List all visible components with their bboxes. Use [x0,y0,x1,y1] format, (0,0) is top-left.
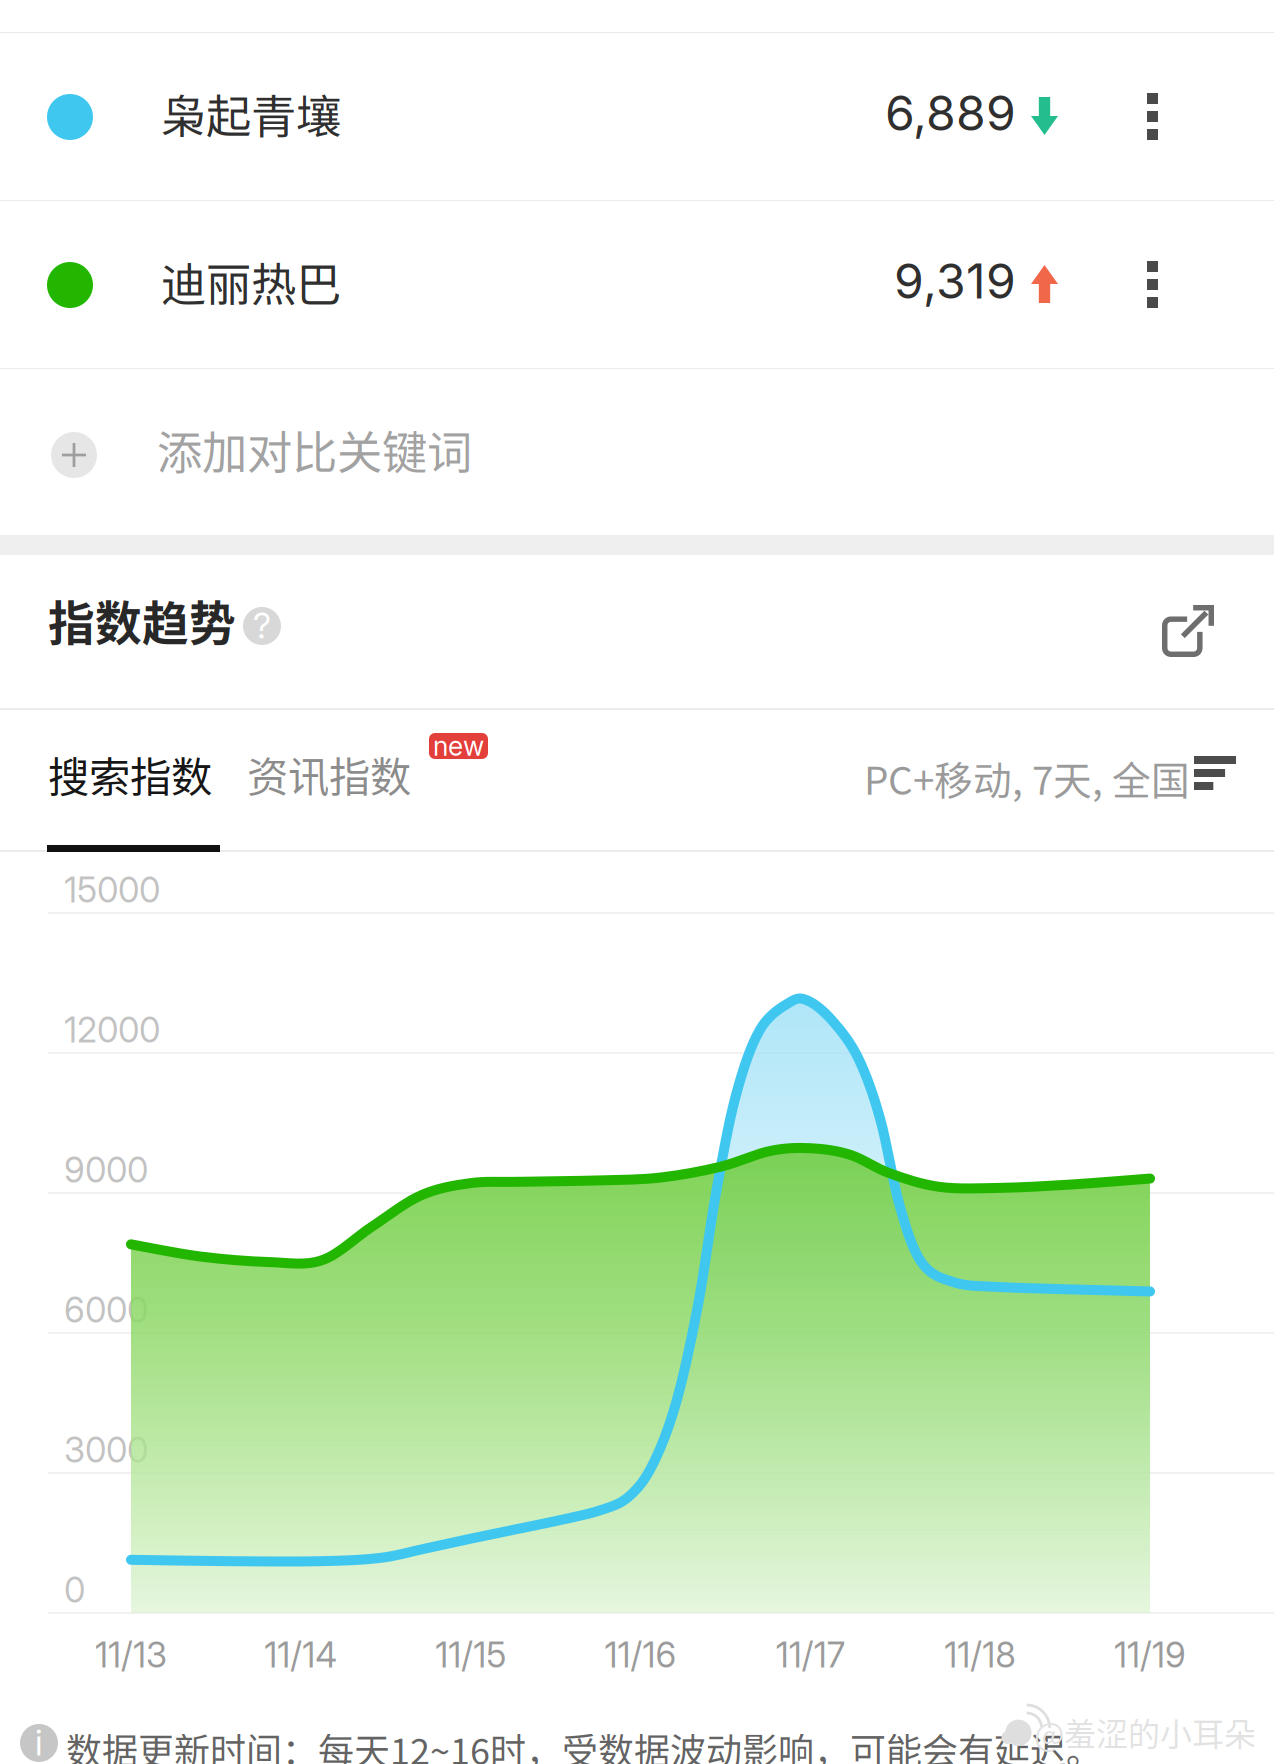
button[interactable]: 在新页面打开 [1134,577,1242,685]
staticText: 11/18 [944,1634,1016,1676]
staticText: 11/13 [95,1634,167,1676]
button[interactable]: PC+移动, 7天, 全国 [864,710,1274,849]
staticText: 9000 [64,1149,148,1191]
staticText: 资讯指数 [247,744,411,804]
staticText: 11/19 [1114,1634,1186,1676]
staticText: 搜索指数 [48,744,212,804]
staticText: 9,319 [894,252,1016,310]
staticText: @羞涩的小耳朵 [1034,1709,1256,1755]
staticText: 15000 [64,869,160,911]
staticText: PC+移动, 7天, 全国 [864,750,1190,806]
staticText: i [35,1722,43,1764]
staticText: 指数趋势 [48,586,236,654]
button[interactable]: 搜索指数 [48,710,228,849]
button[interactable]: 更多操作 [1105,205,1200,364]
staticText: 0 [64,1569,85,1611]
staticText: 6,889 [885,84,1016,142]
staticText: 3000 [64,1429,148,1471]
button[interactable]: 更多操作 [1105,37,1200,196]
button[interactable]: 枭起青壤 [0,33,1274,200]
staticText: 6000 [64,1289,148,1331]
staticText: 枭起青壤 [161,81,341,147]
staticText: 12000 [64,1009,160,1051]
staticText: 迪丽热巴 [161,249,341,315]
staticText: 11/16 [604,1634,676,1676]
button[interactable]: 资讯指数 [247,710,427,849]
staticText: 11/14 [264,1634,337,1676]
staticText: 11/17 [776,1634,845,1676]
staticText: new [433,730,484,762]
button[interactable]: 添加对比关键词 [0,369,1274,535]
staticText: 数据更新时间：每天12~16时，受数据波动影响，可能会有延迟。 [66,1723,1102,1764]
staticText: ? [253,605,271,647]
staticText: 11/15 [435,1634,506,1676]
staticText: 添加对比关键词 [157,417,472,483]
button[interactable]: 迪丽热巴 [0,201,1274,368]
